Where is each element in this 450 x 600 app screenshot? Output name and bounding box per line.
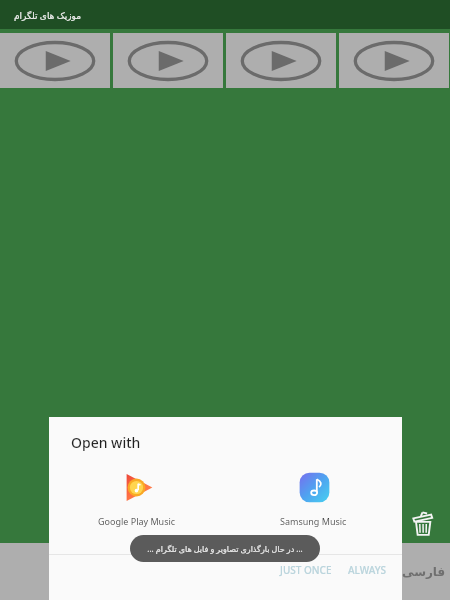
staticText: JUST ONCE	[280, 563, 332, 577]
button[interactable]: Play track 1	[0, 33, 110, 88]
button[interactable]: Samsung Music	[225, 467, 402, 527]
staticText: Samsung Music	[280, 515, 347, 527]
staticText: Open with	[71, 433, 141, 452]
button[interactable]: Play track 3	[226, 33, 336, 88]
staticText: فارسی	[402, 565, 446, 579]
staticText: ... در حال بارگذاری تصاویر و فایل های تل…	[147, 543, 303, 554]
button[interactable]: Google Play Music	[49, 467, 225, 527]
button[interactable]: Play track 4	[339, 33, 449, 88]
button[interactable]: Delete	[402, 503, 442, 543]
button[interactable]: JUST ONCE	[272, 559, 340, 581]
staticText: ALWAYS	[348, 563, 386, 577]
staticText: Google Play Music	[98, 515, 176, 527]
button[interactable]: ALWAYS	[340, 559, 394, 581]
button[interactable]: Play track 2	[113, 33, 223, 88]
staticText: موزیک های تلگرام	[14, 9, 82, 21]
button[interactable]: Persian	[398, 543, 450, 600]
